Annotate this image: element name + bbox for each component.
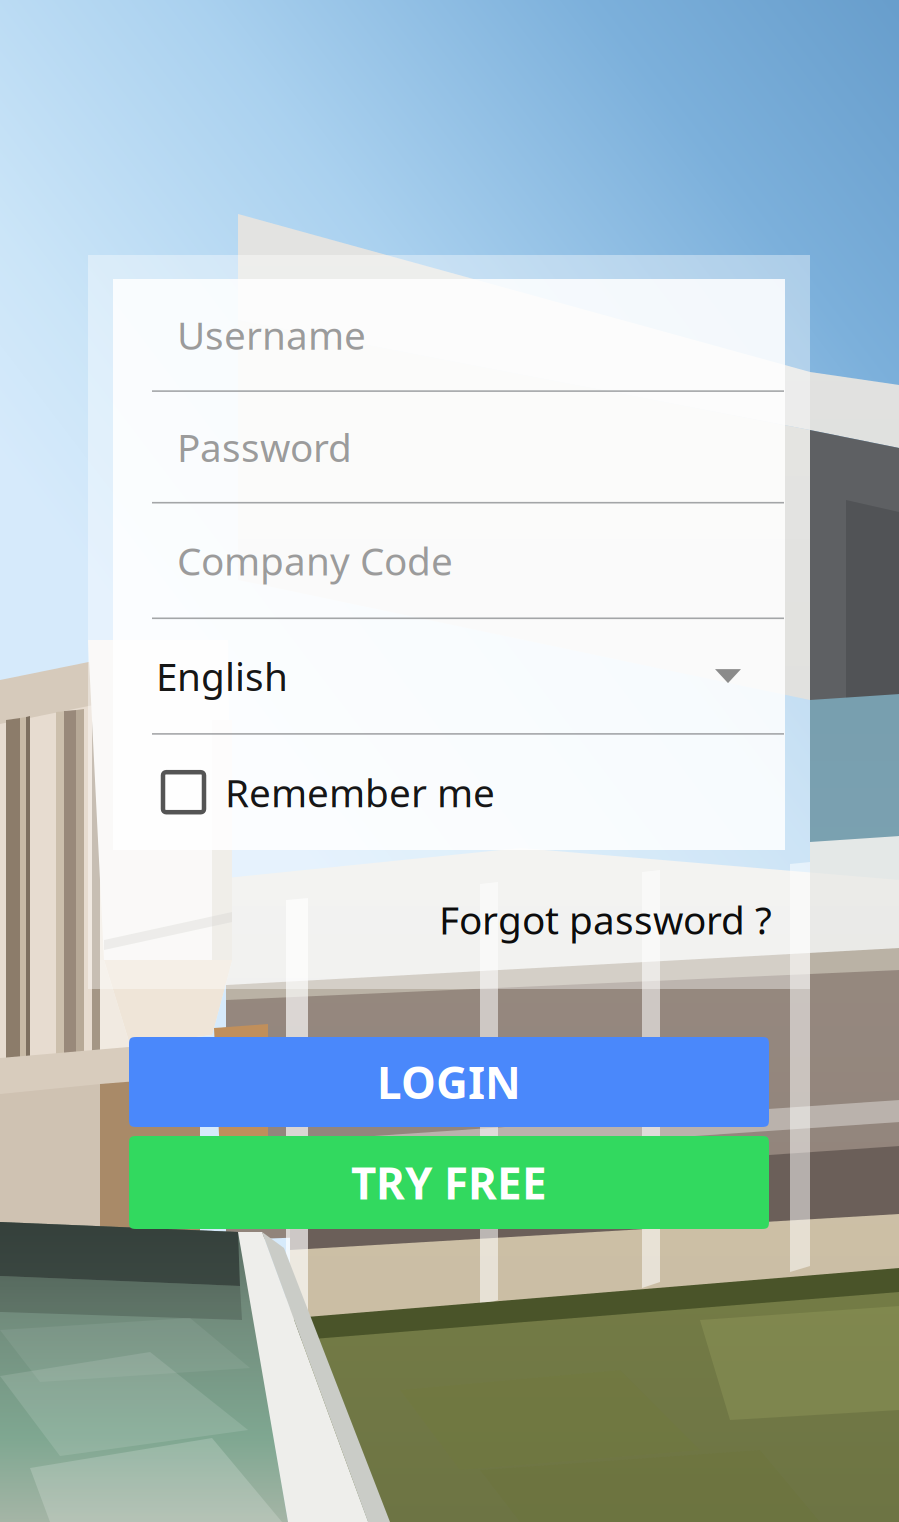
staticText: Password (177, 421, 352, 472)
staticText: Username (177, 309, 366, 360)
staticText: English (156, 650, 288, 702)
button[interactable]: Forgot password ? (439, 894, 772, 945)
button[interactable]: LOGIN (129, 1037, 769, 1127)
button[interactable]: TRY FREE (129, 1136, 769, 1229)
staticText: Forgot password ? (439, 894, 772, 945)
button[interactable]: Remember me (113, 735, 785, 850)
staticText: LOGIN (377, 1053, 521, 1111)
staticText: TRY FREE (351, 1153, 547, 1212)
staticText: Company Code (177, 535, 453, 586)
staticText: Remember me (225, 766, 495, 818)
